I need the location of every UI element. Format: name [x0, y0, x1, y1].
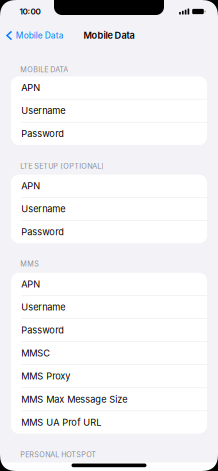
staticText: LTE SETUP (OPTIONAL) — [20, 162, 104, 170]
staticText: Password — [21, 325, 64, 336]
staticText: APN — [21, 82, 40, 93]
staticText: Password — [21, 226, 64, 237]
button[interactable]: APN — [11, 273, 207, 295]
staticText: MMS Proxy — [21, 371, 70, 382]
staticText: MMSC — [21, 348, 50, 359]
button[interactable]: Password — [11, 221, 207, 243]
staticText: Username — [21, 105, 65, 116]
button[interactable]: APN — [11, 175, 207, 197]
staticText: MMS UA Prof URL — [21, 417, 101, 428]
staticText: PERSONAL HOTSPOT — [20, 450, 96, 459]
staticText: APN — [21, 278, 40, 290]
staticText: Username — [21, 203, 65, 214]
button[interactable]: Username — [11, 99, 207, 122]
button[interactable]: MMS UA Prof URL — [11, 411, 207, 434]
staticText: 10:00 — [19, 7, 40, 16]
button[interactable]: Mobile Data — [0, 23, 68, 48]
button[interactable]: Username — [11, 198, 207, 220]
button[interactable]: Username — [11, 296, 207, 318]
staticText: APN — [21, 180, 40, 191]
staticText: Mobile Data — [16, 30, 64, 41]
button[interactable]: Password — [11, 122, 207, 145]
staticText: Password — [21, 128, 64, 139]
staticText: Mobile Data — [83, 30, 134, 41]
staticText: Username — [21, 301, 65, 313]
staticText: MMS Max Message Size — [21, 394, 127, 405]
button[interactable]: MMS Proxy — [11, 365, 207, 387]
button[interactable]: APN — [11, 76, 207, 99]
button[interactable]: MMS Max Message Size — [11, 388, 207, 410]
button[interactable]: MMSC — [11, 342, 207, 364]
staticText: MMS — [20, 259, 39, 268]
button[interactable]: Password — [11, 319, 207, 341]
staticText: MOBILE DATA — [20, 65, 68, 74]
